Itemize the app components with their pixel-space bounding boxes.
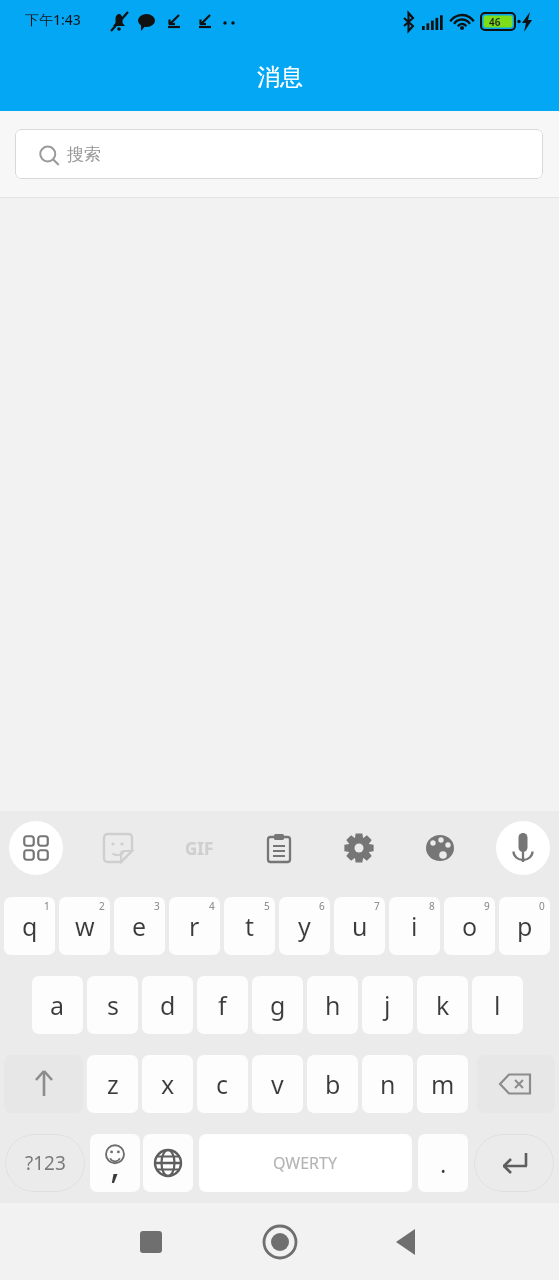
staticText: v [271, 1067, 284, 1101]
staticText: 4 [209, 899, 215, 913]
button[interactable]: n [362, 1055, 413, 1113]
button[interactable]: Theme [413, 821, 467, 875]
button[interactable]: Stickers [91, 821, 145, 875]
staticText: l [494, 988, 501, 1022]
staticText: q [22, 909, 38, 943]
staticText: b [325, 1067, 341, 1101]
staticText: 1 [44, 899, 50, 913]
staticText: c [216, 1067, 229, 1101]
staticText: f [218, 988, 227, 1022]
button[interactable]: QWERTY [199, 1134, 412, 1192]
button[interactable]: Clipboard [252, 821, 306, 875]
staticText: 8 [429, 899, 435, 913]
staticText: . [440, 1147, 447, 1180]
staticText: r [189, 909, 200, 943]
staticText: d [160, 988, 176, 1022]
staticText: 搜索 [67, 144, 101, 165]
staticText: n [380, 1067, 396, 1101]
button[interactable]: Backspace [477, 1055, 555, 1113]
staticText: 消息 [257, 63, 303, 92]
button[interactable]: Change language [143, 1134, 193, 1192]
button[interactable]: Shift [4, 1055, 83, 1113]
staticText: 6 [319, 899, 325, 913]
staticText: e [132, 909, 147, 943]
staticText: y [298, 909, 311, 943]
button[interactable]: i [389, 897, 440, 955]
staticText: k [436, 988, 450, 1022]
button[interactable]: Settings [332, 821, 386, 875]
staticText: j [384, 988, 391, 1022]
button[interactable]: k [417, 976, 468, 1034]
button[interactable]: g [252, 976, 303, 1034]
button[interactable]: w [59, 897, 110, 955]
button[interactable]: e [114, 897, 165, 955]
button[interactable]: s [87, 976, 138, 1034]
staticText: a [50, 988, 65, 1022]
button[interactable]: d [142, 976, 193, 1034]
staticText: h [325, 988, 341, 1022]
button[interactable]: c [197, 1055, 248, 1113]
button[interactable]: 搜索 [15, 129, 543, 179]
button[interactable]: m [417, 1055, 468, 1113]
staticText: s [107, 988, 119, 1022]
staticText: i [411, 909, 418, 943]
button[interactable]: l [472, 976, 523, 1034]
button[interactable]: z [87, 1055, 138, 1113]
staticText: p [517, 909, 533, 943]
button[interactable]: f [197, 976, 248, 1034]
staticText: o [462, 909, 478, 943]
staticText: 9 [484, 899, 490, 913]
button[interactable]: Enter [474, 1134, 554, 1192]
button[interactable]: b [307, 1055, 358, 1113]
staticText: 5 [264, 899, 270, 913]
button[interactable]: u [334, 897, 385, 955]
button[interactable]: a [32, 976, 83, 1034]
staticText: t [245, 909, 255, 943]
button[interactable]: h [307, 976, 358, 1034]
staticText: 3 [154, 899, 160, 913]
staticText: 46 [489, 15, 501, 29]
button[interactable]: Recents [115, 1203, 187, 1280]
button[interactable]: Home [244, 1203, 316, 1280]
button[interactable]: t [224, 897, 275, 955]
button[interactable]: GIF [172, 821, 226, 875]
staticText: w [75, 909, 95, 943]
staticText: u [352, 909, 368, 943]
staticText: GIF [185, 837, 214, 860]
staticText: 2 [99, 899, 105, 913]
staticText: QWERTY [273, 1152, 338, 1174]
button[interactable]: Voice input [496, 821, 550, 875]
staticText: 下午1:43 [25, 10, 81, 29]
button[interactable]: p [499, 897, 550, 955]
button[interactable]: q [4, 897, 55, 955]
button[interactable]: x [142, 1055, 193, 1113]
button[interactable]: Back [371, 1203, 443, 1280]
button[interactable]: y [279, 897, 330, 955]
button[interactable]: Keyboard modes [9, 821, 63, 875]
staticText: x [161, 1067, 175, 1101]
staticText: 0 [539, 899, 545, 913]
button[interactable]: Emoji [90, 1134, 140, 1192]
staticText: ?123 [25, 1150, 66, 1176]
button[interactable]: r [169, 897, 220, 955]
staticText: 7 [374, 899, 380, 913]
button[interactable]: o [444, 897, 495, 955]
staticText: g [270, 988, 286, 1022]
button[interactable]: ?123 [5, 1134, 85, 1192]
button[interactable]: j [362, 976, 413, 1034]
button[interactable]: . [418, 1134, 468, 1192]
staticText: z [107, 1067, 119, 1101]
button[interactable]: v [252, 1055, 303, 1113]
staticText: m [431, 1067, 455, 1101]
